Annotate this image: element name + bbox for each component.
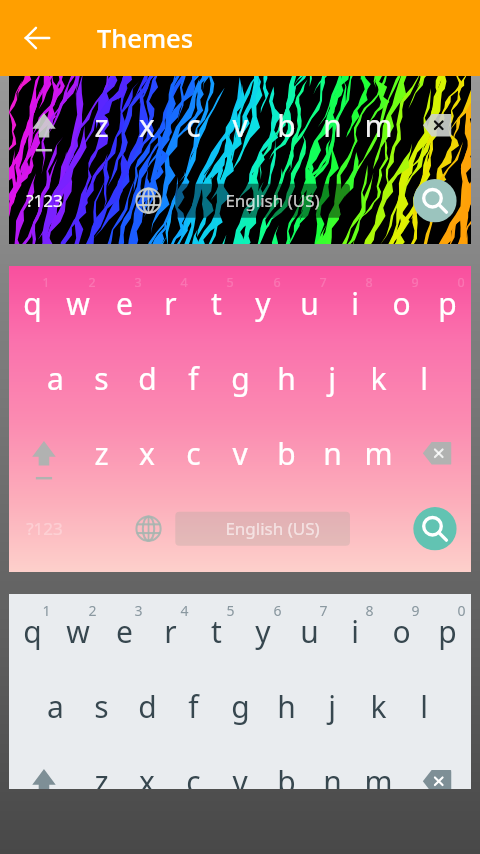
staticText: v (232, 105, 248, 146)
staticText: c (186, 433, 201, 474)
staticText: n (323, 433, 342, 474)
button[interactable]: q (9, 76, 471, 244)
staticText: a (47, 358, 64, 399)
staticText: v (232, 433, 248, 474)
staticText: 3 (134, 274, 142, 291)
staticText: 4 (180, 601, 189, 620)
staticText: t (211, 283, 222, 324)
staticText: h (277, 358, 296, 399)
staticText: 6 (273, 601, 282, 620)
staticText: y (255, 283, 271, 324)
staticText: 2 (88, 274, 96, 291)
staticText: f (188, 358, 199, 399)
staticText: ?123 (26, 189, 63, 212)
button[interactable]: q (9, 594, 471, 789)
staticText: r (164, 611, 177, 652)
staticText: x (139, 761, 155, 789)
staticText: w (66, 283, 90, 324)
staticText: 8 (365, 274, 373, 291)
staticText: 1 (42, 601, 51, 620)
staticText: English (US) (225, 189, 320, 212)
staticText: d (138, 358, 157, 399)
staticText: x (139, 105, 155, 146)
staticText: r (164, 283, 177, 324)
staticText: s (94, 686, 109, 727)
staticText: b (277, 105, 296, 146)
staticText: a (47, 686, 64, 727)
staticText: n (323, 105, 342, 146)
staticText: m (364, 433, 393, 474)
staticText: Themes (97, 21, 194, 56)
staticText: i (351, 283, 359, 324)
staticText: y (255, 611, 271, 652)
staticText: o (392, 611, 411, 652)
staticText: ?123 (26, 517, 63, 540)
staticText: t (211, 611, 222, 652)
button[interactable]: Back (14, 15, 60, 61)
staticText: c (186, 761, 201, 789)
button[interactable]: q (9, 266, 471, 572)
staticText: j (328, 686, 336, 727)
staticText: i (351, 611, 359, 652)
staticText: 6 (273, 274, 281, 291)
staticText: 8 (365, 601, 374, 620)
staticText: 1 (42, 274, 50, 291)
staticText: m (364, 105, 393, 146)
staticText: k (370, 358, 387, 399)
staticText: z (94, 433, 109, 474)
staticText: q (23, 611, 42, 652)
staticText: e (116, 611, 133, 652)
staticText: n (323, 761, 342, 789)
staticText: 5 (226, 601, 235, 620)
staticText: j (328, 358, 336, 399)
staticText: z (94, 105, 109, 146)
staticText: p (438, 611, 457, 652)
staticText: m (364, 761, 393, 789)
staticText: l (420, 686, 428, 727)
staticText: s (94, 358, 109, 399)
staticText: 7 (319, 274, 327, 291)
staticText: p (438, 283, 457, 324)
staticText: g (231, 358, 250, 399)
staticText: 0 (457, 601, 466, 620)
staticText: 3 (134, 601, 143, 620)
staticText: q (23, 283, 42, 324)
staticText: 0 (457, 274, 465, 291)
staticText: f (188, 686, 199, 727)
staticText: English (US) (225, 517, 320, 540)
staticText: o (392, 283, 411, 324)
staticText: 9 (411, 601, 420, 620)
staticText: z (94, 761, 109, 789)
staticText: u (300, 611, 319, 652)
staticText: x (139, 433, 155, 474)
staticText: c (186, 105, 201, 146)
staticText: l (420, 358, 428, 399)
staticText: b (277, 433, 296, 474)
staticText: v (232, 761, 248, 789)
staticText: b (277, 761, 296, 789)
staticText: h (277, 686, 296, 727)
staticText: g (231, 686, 250, 727)
staticText: d (138, 686, 157, 727)
staticText: 4 (180, 274, 188, 291)
staticText: k (370, 686, 387, 727)
staticText: e (116, 283, 133, 324)
staticText: 5 (226, 274, 234, 291)
staticText: 7 (319, 601, 328, 620)
staticText: 9 (411, 274, 419, 291)
staticText: w (66, 611, 90, 652)
staticText: u (300, 283, 319, 324)
staticText: 2 (88, 601, 97, 620)
